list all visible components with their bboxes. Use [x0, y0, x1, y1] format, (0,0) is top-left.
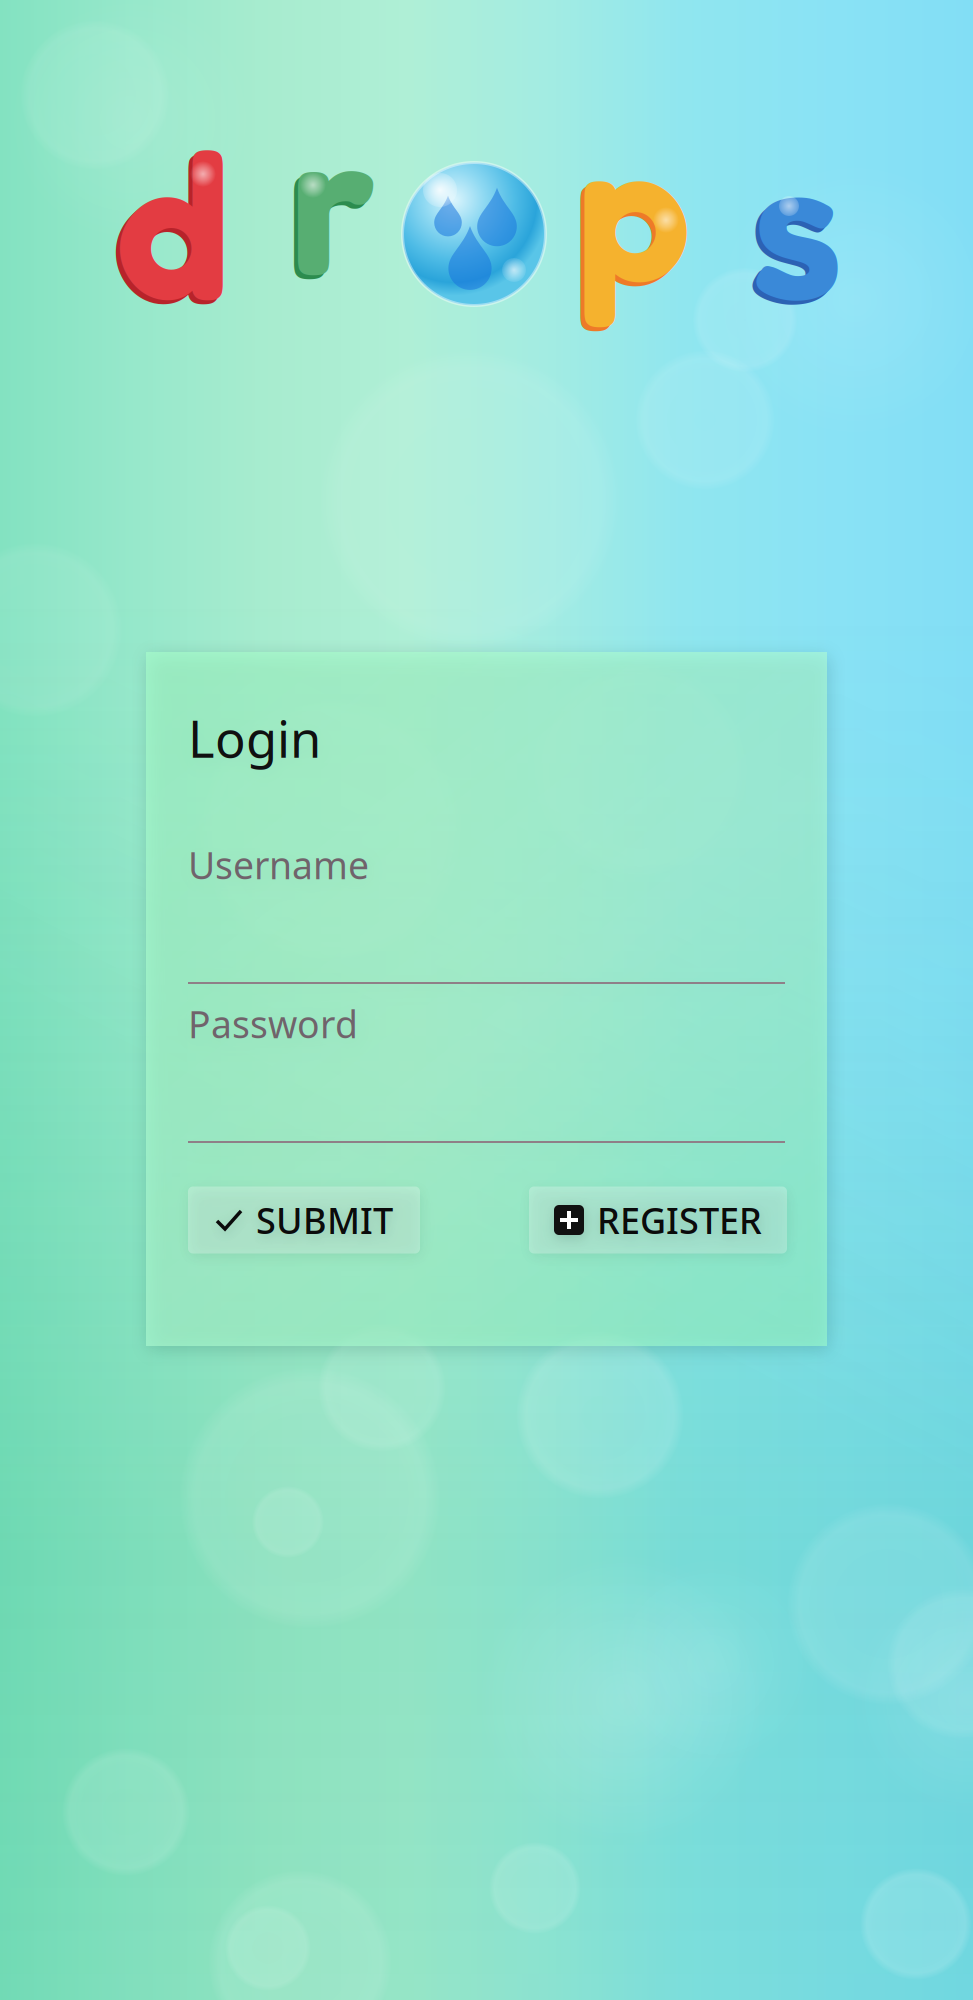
staticText: s — [747, 107, 839, 349]
staticText: SUBMIT — [256, 1196, 393, 1244]
staticText: d — [110, 101, 227, 351]
staticText: r — [289, 72, 376, 322]
staticText: Username — [188, 840, 369, 890]
staticText: p — [577, 81, 691, 331]
button[interactable]: SUBMIT — [188, 1186, 420, 1253]
staticText: REGISTER — [597, 1196, 762, 1244]
staticText: s — [751, 103, 843, 345]
staticText: Login — [188, 704, 321, 772]
button[interactable]: Username — [188, 864, 785, 984]
staticText: d — [114, 97, 231, 347]
button[interactable]: REGISTER — [529, 1186, 787, 1253]
button[interactable]: Password — [188, 1023, 785, 1143]
staticText: r — [285, 76, 372, 326]
staticText: p — [573, 85, 687, 335]
staticText: Password — [188, 999, 358, 1049]
